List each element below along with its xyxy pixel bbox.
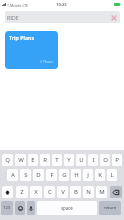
button[interactable]: Q	[2, 154, 13, 166]
button[interactable]: K	[95, 169, 105, 181]
button[interactable]: RIDE	[5, 11, 120, 23]
button[interactable]: O	[100, 154, 110, 166]
staticText: Z	[20, 188, 24, 196]
button[interactable]: Y	[64, 154, 74, 166]
button[interactable]: V	[57, 186, 68, 198]
button[interactable]: C	[44, 186, 55, 198]
button[interactable]: P	[112, 154, 122, 166]
button[interactable]: 123	[1, 201, 13, 215]
staticText: X	[34, 188, 38, 196]
staticText: U	[79, 156, 84, 164]
button[interactable]: L	[107, 169, 117, 181]
button[interactable]: Shift	[2, 186, 13, 198]
staticText: L	[110, 171, 114, 179]
staticText: A	[11, 171, 15, 179]
staticText: T-Mobile LTE	[7, 3, 29, 8]
staticText: RIDE	[7, 14, 19, 21]
staticText: 10:23	[56, 2, 67, 8]
button[interactable]: X	[30, 186, 42, 198]
button[interactable]: Trip Plans	[5, 31, 58, 69]
staticText: F	[50, 171, 54, 179]
button[interactable]: W	[15, 154, 26, 166]
staticText: C	[48, 188, 52, 196]
button[interactable]: return	[99, 201, 121, 215]
button[interactable]: G	[59, 169, 69, 181]
button[interactable]: I	[88, 154, 98, 166]
staticText: I	[92, 156, 95, 164]
button[interactable]: space	[37, 201, 97, 215]
button[interactable]: Z	[16, 186, 28, 198]
staticText: W	[18, 156, 24, 164]
button[interactable]: D	[33, 169, 44, 181]
button[interactable]: Clear text	[110, 14, 117, 21]
staticText: space	[61, 205, 73, 211]
staticText: G	[62, 171, 67, 179]
button[interactable]: J	[83, 169, 93, 181]
staticText: E	[31, 156, 35, 164]
button[interactable]: T	[52, 154, 62, 166]
staticText: O	[103, 156, 108, 164]
staticText: J	[87, 171, 89, 179]
button[interactable]: Dictation	[27, 201, 35, 215]
button[interactable]: M	[96, 186, 107, 198]
staticText: D	[36, 171, 41, 179]
staticText: M	[99, 188, 105, 196]
staticText: P	[115, 156, 119, 164]
staticText: N	[86, 188, 91, 196]
staticText: Y	[67, 156, 71, 164]
staticText: 123	[3, 205, 11, 211]
staticText: H	[74, 171, 79, 179]
button[interactable]: F	[46, 169, 57, 181]
staticText: R	[43, 156, 47, 164]
button[interactable]: A	[7, 169, 18, 181]
staticText: return	[104, 205, 117, 211]
button[interactable]: H	[71, 169, 81, 181]
staticText: 2 Places	[40, 59, 53, 64]
button[interactable]: R	[40, 154, 50, 166]
button[interactable]: N	[83, 186, 94, 198]
staticText: S	[24, 171, 28, 179]
staticText: Q	[5, 156, 10, 164]
button[interactable]: S	[20, 169, 31, 181]
staticText: T	[55, 156, 59, 164]
button[interactable]: E	[28, 154, 38, 166]
staticText: K	[98, 171, 102, 179]
staticText: V	[61, 188, 65, 196]
staticText: B	[74, 188, 78, 196]
button[interactable]: B	[70, 186, 81, 198]
button[interactable]: Backspace	[110, 186, 122, 198]
button[interactable]: U	[76, 154, 86, 166]
button[interactable]: Emoji keyboard	[15, 201, 25, 215]
staticText: Trip Plans	[9, 34, 35, 41]
